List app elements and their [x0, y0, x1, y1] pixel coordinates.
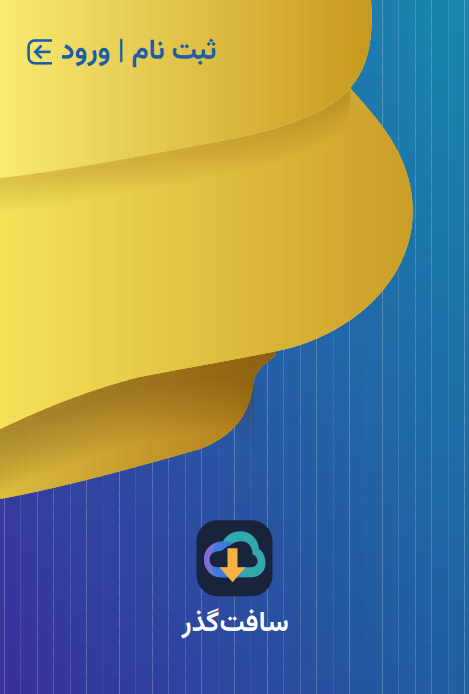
staticText: ثبت نام | ورود: [60, 30, 216, 74]
button[interactable]: ثبت نام | ورود: [21, 26, 222, 78]
staticText: سافت‌گذر: [181, 602, 288, 646]
